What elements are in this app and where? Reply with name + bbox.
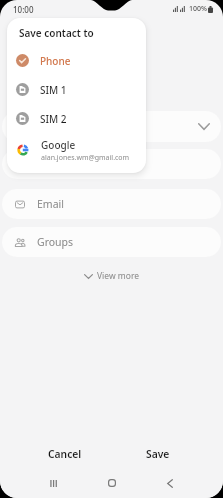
- staticText: 100%: [189, 4, 207, 14]
- staticText: alan.jones.wm@gmail.com: [41, 153, 130, 163]
- button[interactable]: Google: [7, 133, 146, 167]
- staticText: Email: [37, 197, 64, 211]
- button[interactable]: View more: [0, 266, 223, 286]
- button[interactable]: Email: [2, 189, 221, 219]
- button[interactable]: Cancel: [18, 439, 111, 469]
- staticText: SIM 1: [40, 83, 67, 97]
- button[interactable]: Home: [83, 468, 141, 498]
- staticText: Google: [41, 138, 76, 152]
- staticText: View more: [97, 270, 140, 282]
- button[interactable]: SIM 2: [7, 104, 146, 133]
- button[interactable]: Groups: [2, 227, 221, 257]
- button[interactable]: SIM 1: [7, 75, 146, 104]
- button[interactable]: Back: [141, 468, 199, 498]
- staticText: Save: [146, 447, 170, 461]
- staticText: Phone: [40, 54, 71, 68]
- staticText: SIM 2: [40, 112, 67, 126]
- button[interactable]: Phone: [7, 46, 146, 75]
- button[interactable]: Expand: [2, 111, 221, 142]
- staticText: Groups: [37, 235, 74, 249]
- button[interactable]: Save: [111, 439, 205, 469]
- staticText: Cancel: [48, 447, 82, 461]
- other: Expand: [198, 123, 210, 130]
- staticText: 10:00: [13, 4, 34, 15]
- button[interactable]: Recent apps: [24, 468, 83, 498]
- staticText: Save contact to: [19, 26, 94, 40]
- button[interactable]: [2, 149, 221, 179]
